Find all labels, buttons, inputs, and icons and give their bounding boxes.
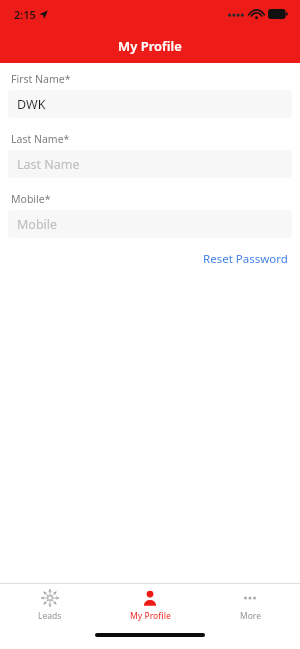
button[interactable]: More [200, 585, 300, 625]
staticText: 2:15 [14, 7, 36, 22]
other: More [241, 589, 259, 607]
staticText: More [240, 610, 261, 622]
staticText: My Profile [118, 37, 182, 55]
button[interactable]: Mobile [8, 210, 292, 238]
staticText: Last Name* [11, 132, 70, 146]
staticText: DWK [17, 96, 46, 113]
staticText: Last Name [17, 156, 80, 173]
button[interactable]: Reset Password [199, 249, 292, 269]
staticText: Reset Password [203, 251, 288, 267]
staticText: Mobile [17, 216, 58, 233]
other: My Profile [142, 590, 158, 606]
staticText: First Name* [11, 72, 71, 86]
button[interactable]: My Profile [100, 585, 200, 625]
other: Leads [41, 589, 59, 607]
staticText: Leads [38, 610, 62, 622]
staticText: Mobile* [11, 192, 51, 206]
button[interactable]: Last Name [8, 150, 292, 178]
staticText: My Profile [130, 610, 171, 622]
button[interactable]: Leads [0, 585, 100, 625]
button[interactable]: DWK [8, 90, 292, 118]
